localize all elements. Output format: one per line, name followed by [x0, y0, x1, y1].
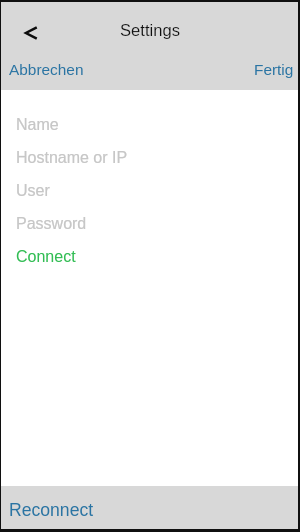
staticText: Connect — [16, 248, 76, 266]
staticText: Name — [16, 116, 59, 134]
staticText: User — [16, 182, 50, 200]
staticText: Reconnect — [9, 500, 94, 520]
button[interactable]: Connect — [0, 240, 300, 273]
staticText: Settings — [120, 21, 180, 40]
button[interactable]: Reconnect — [0, 486, 300, 529]
staticText: Abbrechen — [9, 61, 84, 78]
button[interactable]: Back — [17, 19, 45, 47]
staticText: Password — [16, 215, 87, 233]
button[interactable]: Hostname or IP — [0, 141, 300, 174]
button[interactable]: Name — [0, 108, 300, 141]
staticText: Fertig — [254, 61, 294, 78]
staticText: Hostname or IP — [16, 149, 128, 167]
button[interactable]: Abbrechen — [0, 48, 94, 90]
button[interactable]: Password — [0, 207, 300, 240]
button[interactable]: User — [0, 174, 300, 207]
button[interactable]: Fertig — [244, 48, 300, 90]
